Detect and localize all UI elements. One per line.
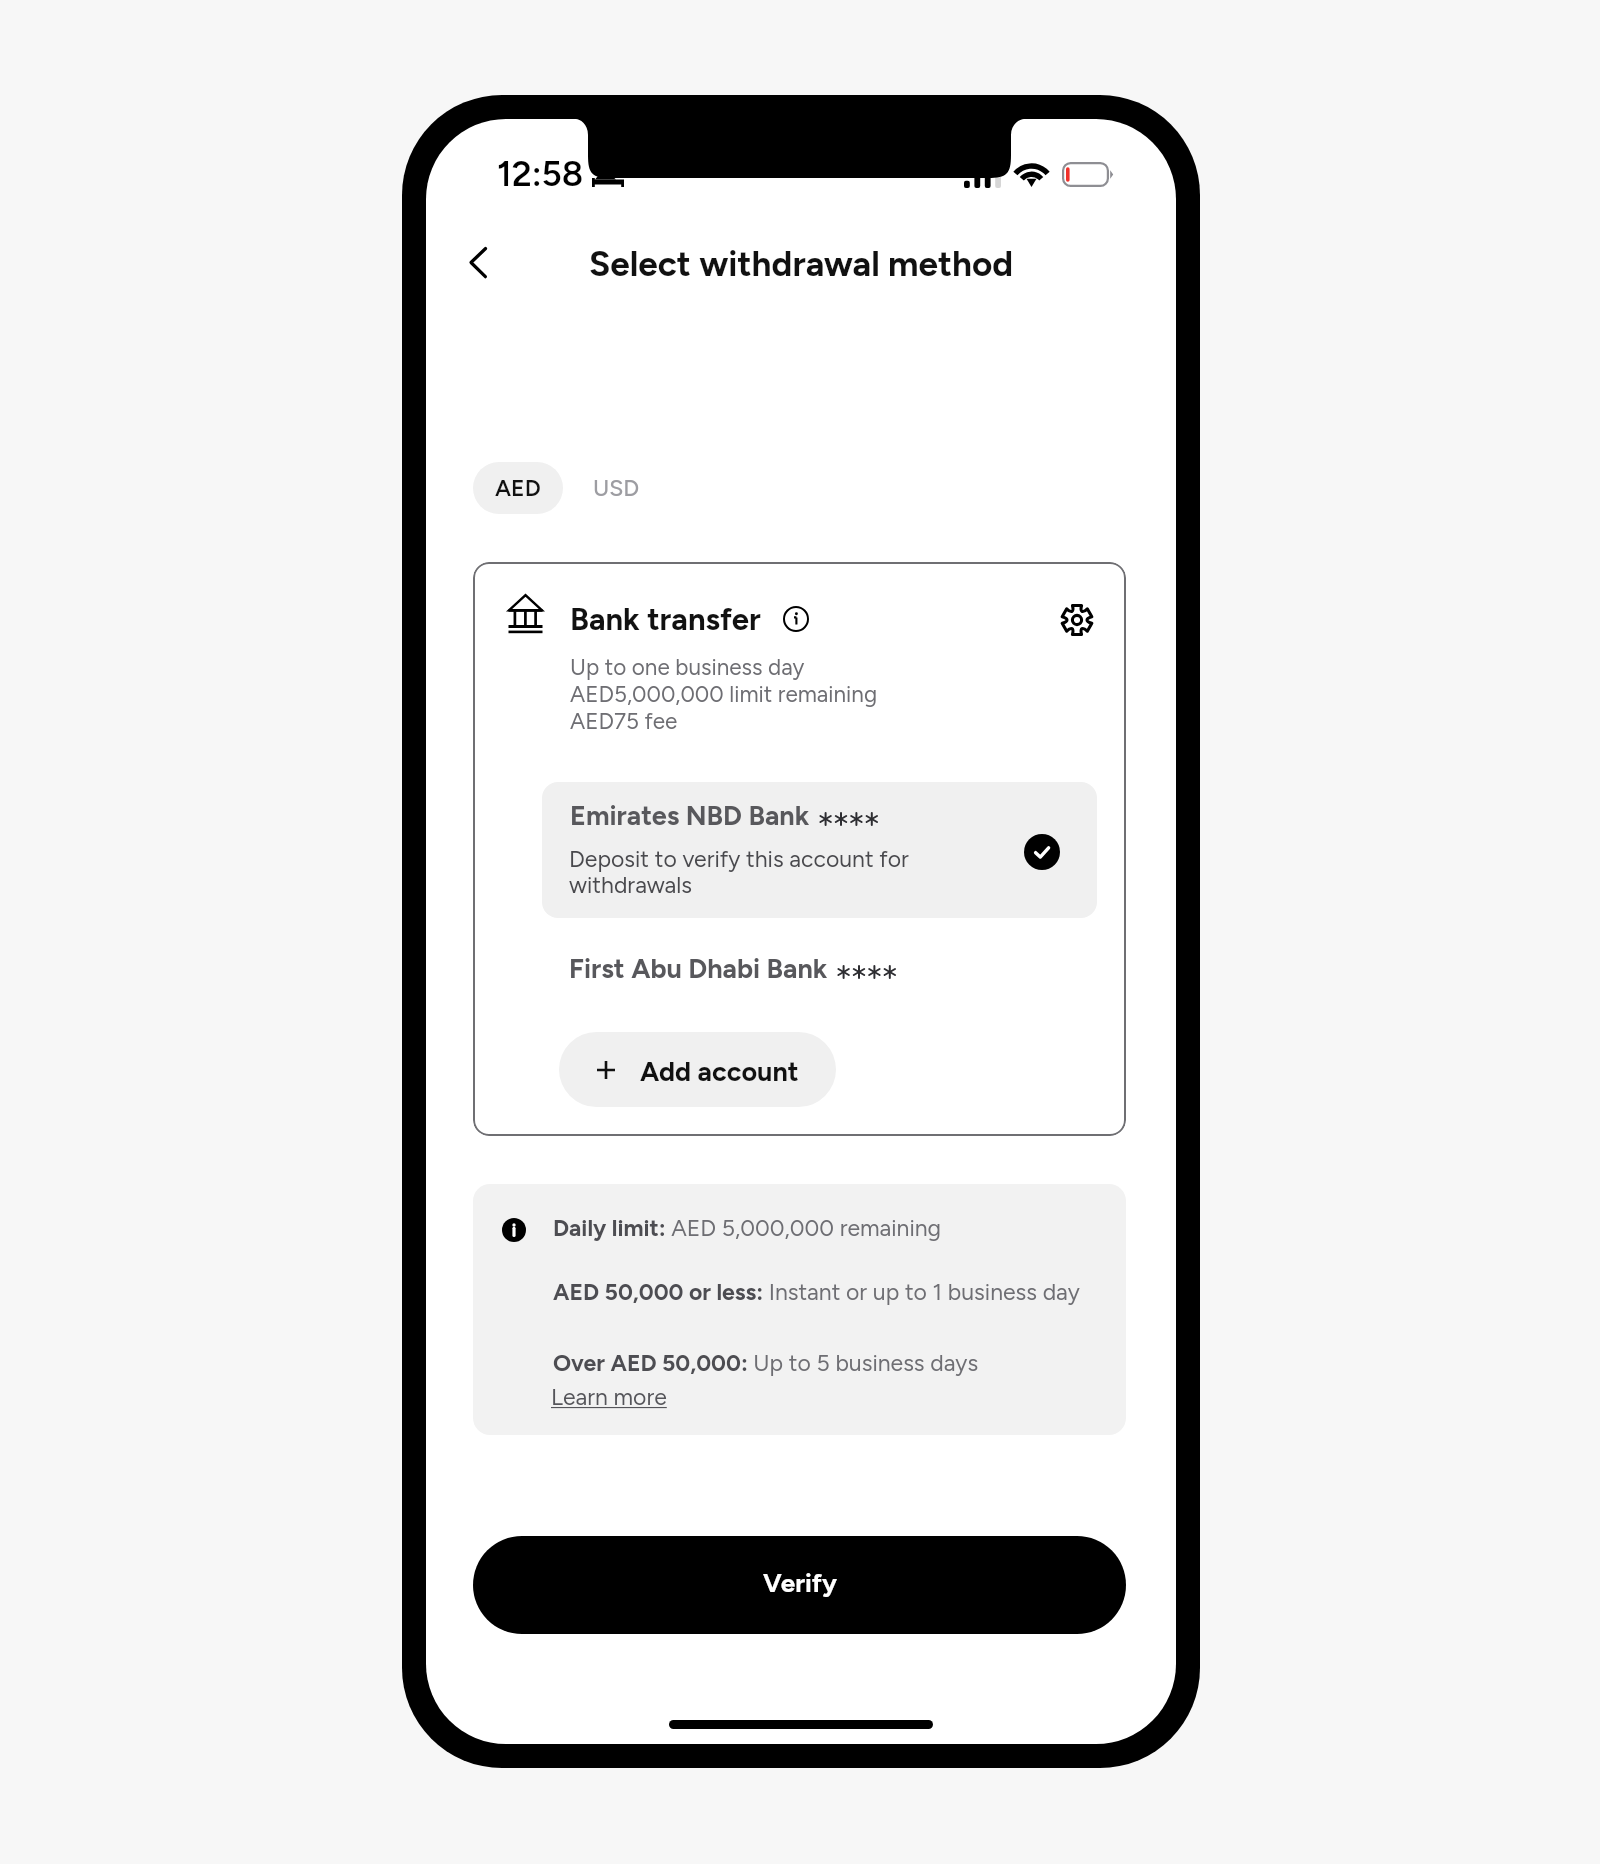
staticText: AED75 fee	[570, 708, 678, 735]
button[interactable]: Emirates NBD Bank	[542, 782, 1097, 918]
staticText: Emirates NBD Bank	[570, 799, 810, 831]
button[interactable]: Settings	[1053, 596, 1101, 644]
staticText: AED	[495, 474, 541, 502]
button[interactable]: Back	[443, 227, 515, 299]
button[interactable]: Verify	[473, 1536, 1126, 1634]
staticText: Daily limit: AED 5,000,000 remaining	[553, 1214, 942, 1242]
button[interactable]: USD	[571, 462, 661, 514]
button[interactable]: Learn more	[551, 1383, 667, 1411]
staticText: Over AED 50,000: Up to 5 business days	[553, 1349, 979, 1377]
staticText: Verify	[763, 1567, 837, 1598]
button[interactable]: First Abu Dhabi Bank	[542, 932, 1097, 990]
staticText: Bank transfer	[570, 601, 761, 638]
staticText: USD	[593, 474, 640, 502]
staticText: AED 50,000 or less: Instant or up to 1 b…	[553, 1278, 1080, 1306]
staticText: Deposit to verify this account for withd…	[569, 845, 909, 898]
staticText: Learn more	[551, 1383, 667, 1411]
staticText: 12:58	[497, 153, 584, 195]
button[interactable]: About bank transfer	[775, 598, 817, 640]
staticText: Up to one business day	[570, 654, 805, 681]
staticText: First Abu Dhabi Bank	[569, 952, 828, 984]
staticText: Add account	[640, 1055, 799, 1087]
button[interactable]: AED	[473, 462, 563, 514]
button[interactable]: Bank transfer	[473, 562, 1126, 1136]
staticText: Select withdrawal method	[589, 243, 1014, 285]
staticText: AED5,000,000 limit remaining	[570, 681, 878, 708]
button[interactable]: Add account	[559, 1032, 836, 1107]
